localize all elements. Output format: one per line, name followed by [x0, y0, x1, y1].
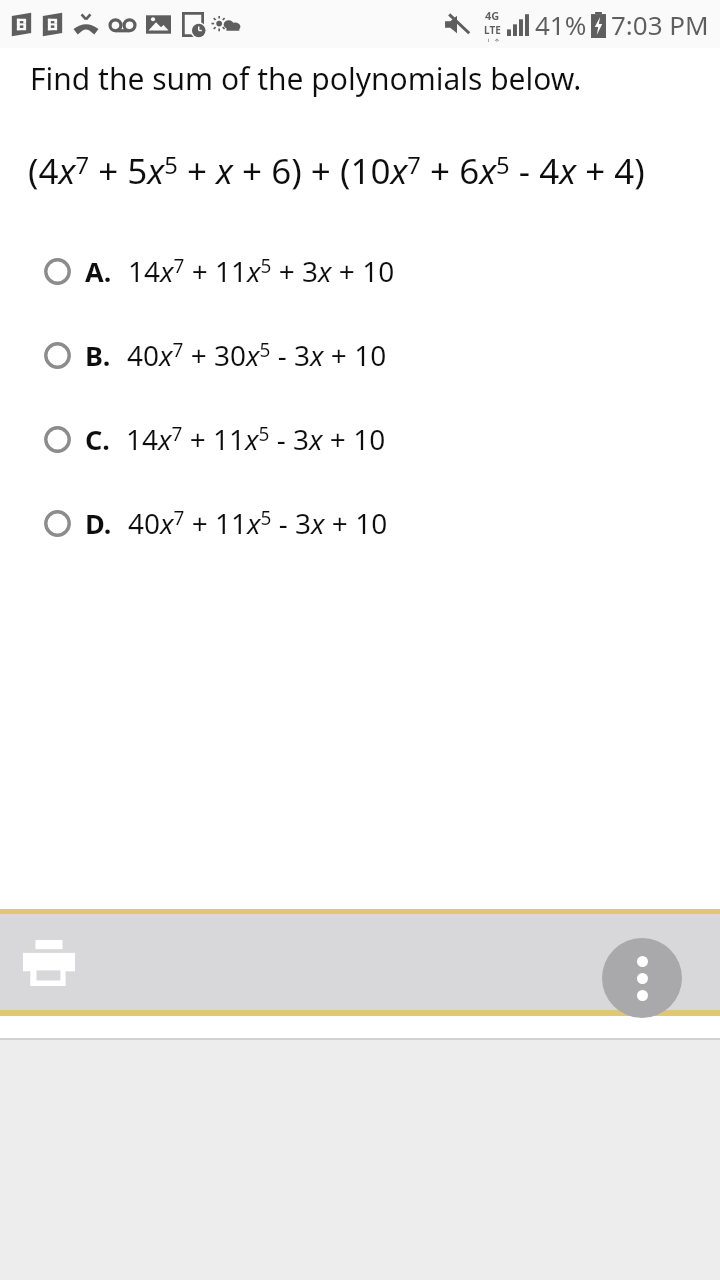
- staticText: 7:03 PM: [611, 7, 709, 42]
- staticText: 4G: [485, 8, 500, 23]
- button[interactable]: C.: [0, 397, 720, 481]
- staticText: (4x7 + 5x5 + x + 6) + (10x7 + 6x5 - 4x +…: [28, 147, 645, 195]
- staticText: D.: [85, 505, 112, 542]
- staticText: B.: [85, 337, 111, 374]
- staticText: ↓↑: [484, 37, 501, 42]
- staticText: LTE: [484, 23, 501, 37]
- staticText: A.: [85, 253, 112, 290]
- staticText: C.: [85, 421, 110, 458]
- button[interactable]: More options: [602, 938, 682, 1018]
- staticText: 41%: [535, 7, 587, 42]
- button[interactable]: B.: [0, 313, 720, 397]
- staticText: 40x7 + 11x5 - 3x + 10: [128, 504, 388, 542]
- staticText: 14x7 + 11x5 + 3x + 10: [128, 252, 395, 290]
- staticText: 40x7 + 30x5 - 3x + 10: [127, 336, 387, 374]
- button[interactable]: A.: [0, 229, 720, 313]
- button[interactable]: D.: [0, 481, 720, 565]
- staticText: 14x7 + 11x5 - 3x + 10: [126, 420, 386, 458]
- staticText: Find the sum of the polynomials below.: [30, 58, 582, 99]
- button[interactable]: Print: [18, 935, 80, 991]
